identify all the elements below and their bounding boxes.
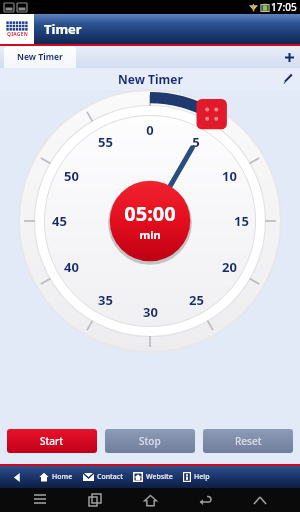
button[interactable]: Timer dial, 5 minutes bbox=[0, 90, 300, 352]
button[interactable]: Home bbox=[39, 466, 73, 488]
staticText: 0 bbox=[146, 121, 154, 139]
button[interactable]: Help bbox=[183, 466, 210, 488]
staticText: 35 bbox=[98, 291, 113, 309]
button[interactable]: Stop bbox=[105, 429, 195, 453]
button[interactable]: Menu bbox=[25, 488, 55, 512]
button[interactable]: Recents bbox=[80, 488, 110, 512]
staticText: Home bbox=[52, 472, 73, 482]
staticText: min bbox=[139, 227, 161, 242]
button[interactable]: Home bbox=[135, 488, 165, 512]
staticText: Reset bbox=[235, 434, 262, 448]
staticText: Start bbox=[40, 434, 64, 448]
staticText: Timer bbox=[44, 20, 82, 38]
staticText: 55 bbox=[98, 133, 113, 151]
staticText: 10 bbox=[222, 167, 237, 185]
button[interactable]: QIAGEN logo bbox=[0, 14, 34, 44]
button[interactable]: Expand bbox=[245, 488, 275, 512]
button[interactable]: Contact bbox=[83, 466, 123, 488]
staticText: 45 bbox=[52, 212, 67, 230]
button[interactable]: Edit timer name bbox=[276, 68, 300, 90]
button[interactable]: Back bbox=[0, 466, 34, 488]
button[interactable]: Reset bbox=[203, 429, 293, 453]
staticText: Contact bbox=[97, 472, 123, 482]
staticText: New Timer bbox=[118, 71, 183, 87]
button[interactable]: Add timer bbox=[278, 46, 300, 68]
button[interactable]: Back bbox=[190, 488, 220, 512]
button[interactable]: Timer bbox=[34, 14, 300, 44]
button[interactable]: Website bbox=[133, 466, 173, 488]
staticText: 20 bbox=[222, 258, 237, 276]
staticText: 40 bbox=[64, 258, 79, 276]
button[interactable]: New Timer bbox=[4, 46, 76, 68]
staticText: Website bbox=[146, 472, 173, 482]
button[interactable]: Start bbox=[7, 429, 97, 453]
staticText: QIAGEN bbox=[7, 31, 28, 38]
staticText: 50 bbox=[64, 167, 79, 185]
staticText: Stop bbox=[139, 434, 161, 448]
staticText: 25 bbox=[189, 291, 204, 309]
staticText: 17:05 bbox=[271, 0, 297, 14]
staticText: 5 bbox=[192, 133, 200, 151]
staticText: 05:00 bbox=[124, 200, 176, 227]
staticText: 30 bbox=[143, 303, 158, 321]
staticText: 15 bbox=[234, 212, 249, 230]
staticText: Help bbox=[194, 472, 210, 482]
staticText: New Timer bbox=[17, 51, 63, 63]
